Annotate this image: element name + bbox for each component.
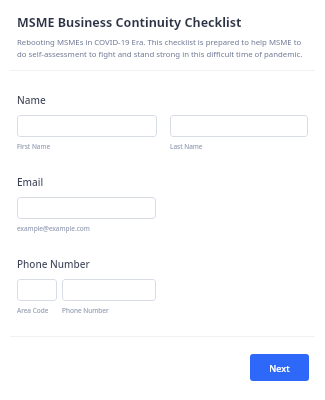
staticText: Last Name	[170, 142, 203, 151]
staticText: Area Code	[17, 306, 49, 315]
button[interactable]: Phone Number	[62, 279, 156, 301]
button[interactable]: Last Name	[170, 115, 308, 137]
staticText: Email	[17, 175, 44, 189]
button[interactable]: Email	[17, 197, 156, 219]
staticText: Phone Number	[62, 306, 109, 315]
staticText: example@example.com	[17, 224, 90, 233]
staticText: Rebooting MSMEs in COVID-19 Era. This ch…	[17, 37, 308, 60]
staticText: Name	[17, 93, 46, 107]
button[interactable]: Area Code	[17, 279, 57, 301]
staticText: Phone Number	[17, 257, 90, 271]
staticText: MSME Business Continuity Checklist	[17, 14, 242, 31]
button[interactable]: First Name	[17, 115, 157, 137]
staticText: Next	[269, 362, 290, 374]
button[interactable]: Next	[250, 354, 309, 381]
staticText: First Name	[17, 142, 51, 151]
